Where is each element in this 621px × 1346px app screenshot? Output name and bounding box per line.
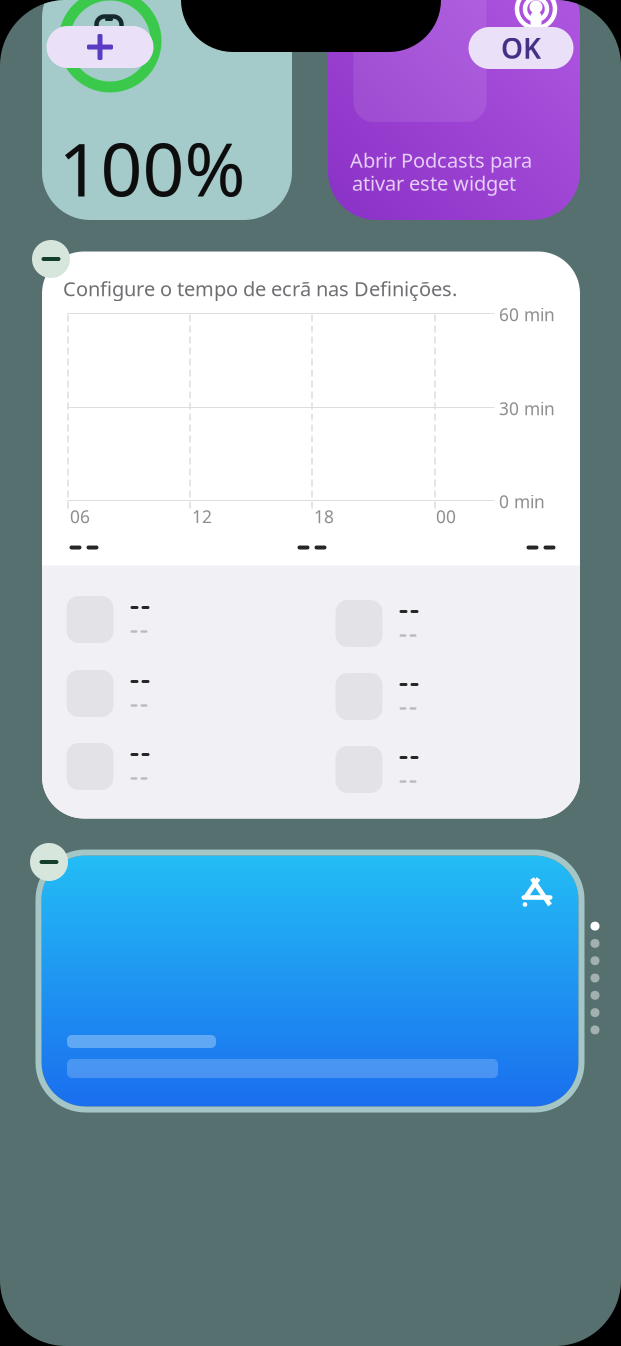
button[interactable]: Add widget [46,26,153,68]
button[interactable]: Screen Time widget [42,251,580,818]
staticText: Abrir Podcasts para [350,147,532,173]
staticText: OK [501,29,541,67]
button[interactable]: Remove widget [30,843,68,881]
staticText: ativar este widget [352,170,516,196]
button[interactable]: Battery widget, 100 percent [42,0,292,220]
button[interactable]: OK [468,27,573,69]
staticText: 30 min [499,397,555,420]
staticText: 0 min [499,490,545,513]
staticText: 100% [58,119,245,217]
staticText: 06 [70,505,90,528]
button[interactable]: Remove widget [32,240,70,278]
staticText: 00 [436,505,456,528]
staticText: 18 [314,505,334,528]
button[interactable]: Podcasts widget [328,0,580,220]
staticText: 60 min [499,303,555,326]
button[interactable]: App Store widget [41,855,578,1106]
staticText: 12 [192,505,212,528]
staticText: Configure o tempo de ecrã nas Definições… [63,275,457,302]
